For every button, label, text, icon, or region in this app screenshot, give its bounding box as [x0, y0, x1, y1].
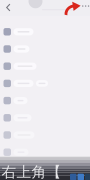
button[interactable]: Back — [2, 0, 14, 15]
button[interactable] — [0, 61, 90, 71]
staticText: 右上角【 — [1, 163, 61, 180]
button[interactable]: More options — [79, 3, 90, 9]
button[interactable] — [0, 130, 90, 140]
button[interactable] — [0, 44, 90, 54]
button[interactable] — [0, 113, 90, 123]
button[interactable] — [0, 27, 90, 37]
button[interactable] — [0, 147, 90, 157]
button[interactable] — [0, 96, 90, 106]
button[interactable] — [0, 78, 90, 88]
